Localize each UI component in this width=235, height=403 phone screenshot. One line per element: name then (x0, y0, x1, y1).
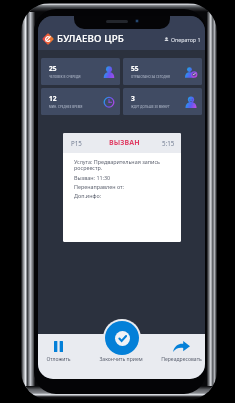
staticText: Закончить прием (99, 356, 143, 363)
staticText: ЧЕЛОВЕК В ОЧЕРЕДИ (49, 75, 81, 79)
button[interactable]: Закончить прием (105, 321, 139, 355)
staticText: Перенаправлен от: (74, 183, 125, 190)
staticText: Оператор 1 (171, 36, 201, 43)
button[interactable]: P15 (63, 133, 181, 242)
button[interactable]: 12 (41, 88, 120, 115)
staticText: Отложить (46, 356, 71, 363)
button[interactable]: Отложить (38, 334, 93, 379)
staticText: 12 (49, 94, 57, 103)
button[interactable]: 55 (123, 58, 202, 85)
staticText: ОТРАБОТАНО ЗА СЕГОДНЯ (131, 75, 170, 79)
staticText: 55 (131, 64, 139, 73)
staticText: Услуга: Предварительная запись росреестр… (74, 158, 176, 172)
button[interactable]: 3 (123, 88, 202, 115)
staticText: ЖДУТ ДОЛЬШЕ 30 МИНУТ (131, 105, 170, 109)
staticText: БУЛАЕВО ЦРБ (57, 32, 125, 45)
staticText: 3 (131, 94, 135, 103)
staticText: Вызван: 11:30 (74, 174, 111, 181)
button[interactable]: Закончить прием (93, 334, 149, 379)
staticText: МИН. СРЕДНЕЕ ВРЕМЯ (49, 105, 83, 109)
button[interactable]: Переадресовать (149, 334, 205, 379)
button[interactable]: 25 (41, 58, 120, 85)
staticText: Переадресовать (161, 356, 202, 363)
staticText: 25 (49, 64, 57, 73)
staticText: ВЫЗВАН (109, 138, 140, 148)
staticText: P15 (71, 139, 82, 147)
staticText: Доп.инфо: (74, 192, 102, 199)
staticText: 5:15 (162, 139, 175, 147)
button[interactable]: Оператор 1 (164, 36, 201, 43)
